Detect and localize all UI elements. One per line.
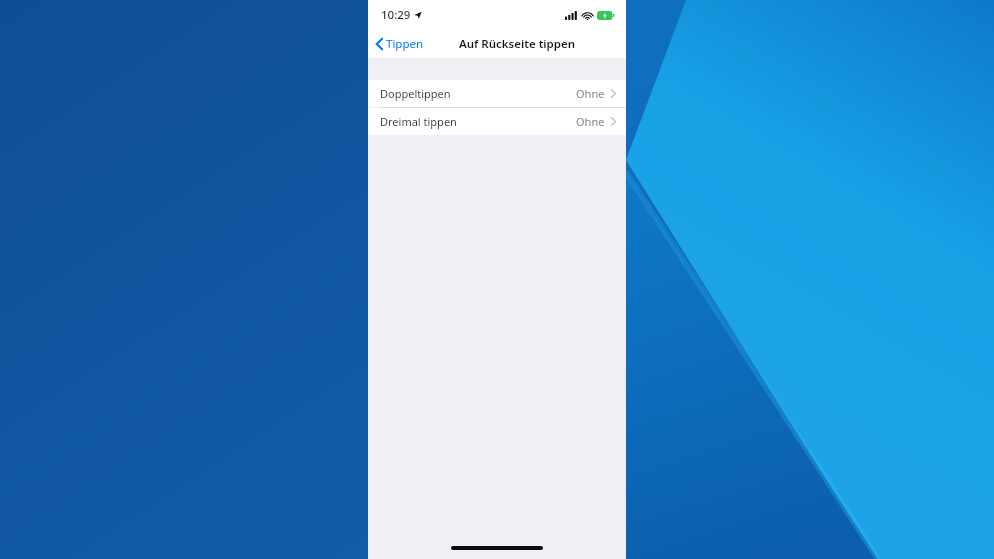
button[interactable]: Doppeltippen (368, 80, 626, 107)
staticText: Doppeltippen (380, 86, 451, 101)
staticText: 10:29 (381, 7, 411, 23)
button[interactable]: Dreimal tippen (368, 108, 626, 135)
button[interactable]: Tippen (368, 32, 430, 56)
staticText: Dreimal tippen (380, 114, 457, 129)
staticText: Ohne (576, 86, 605, 101)
staticText: Ohne (576, 114, 605, 129)
staticText: Auf Rückseite tippen (459, 36, 576, 52)
staticText: Tippen (386, 36, 424, 52)
